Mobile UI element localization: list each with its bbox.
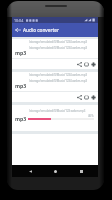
- button[interactable]: Home: [47, 165, 63, 177]
- staticText: mp3: [15, 115, 27, 122]
- staticText: mp3: [15, 49, 27, 56]
- staticText: 46%: [88, 114, 94, 118]
- button[interactable]: mp3: [12, 72, 98, 102]
- button[interactable]: mp3: [12, 39, 98, 69]
- button[interactable]: Options: [90, 92, 97, 102]
- staticText: /storage/emulated/0/Music/123.webm.mp3: [29, 109, 86, 113]
- button[interactable]: Save: [83, 92, 90, 102]
- staticText: Audio converter: [23, 27, 59, 33]
- button[interactable]: Back: [22, 165, 38, 177]
- staticText: mp3: [15, 82, 27, 89]
- button[interactable]: Navigate up: [12, 23, 23, 37]
- staticText: /storage/emulated/0/Music/1234.webm.mp3: [29, 73, 87, 77]
- button[interactable]: Options: [90, 59, 97, 69]
- staticText: /storage/emulated/0/Music/1234.webm.mp3: [29, 40, 87, 44]
- button[interactable]: Share: [76, 59, 83, 69]
- staticText: /storage/emulated/0/Music/1234.webm.mp3: [29, 46, 87, 50]
- staticText: /storage/emulated/0/Music/1234.webm.mp3: [29, 79, 87, 83]
- button[interactable]: /storage/emulated/0/Music/123.webm.mp3: [12, 105, 98, 131]
- button[interactable]: Recents: [73, 165, 89, 177]
- button[interactable]: Save: [83, 59, 90, 69]
- staticText: 10:04: [14, 18, 24, 23]
- button[interactable]: Share: [76, 92, 83, 102]
